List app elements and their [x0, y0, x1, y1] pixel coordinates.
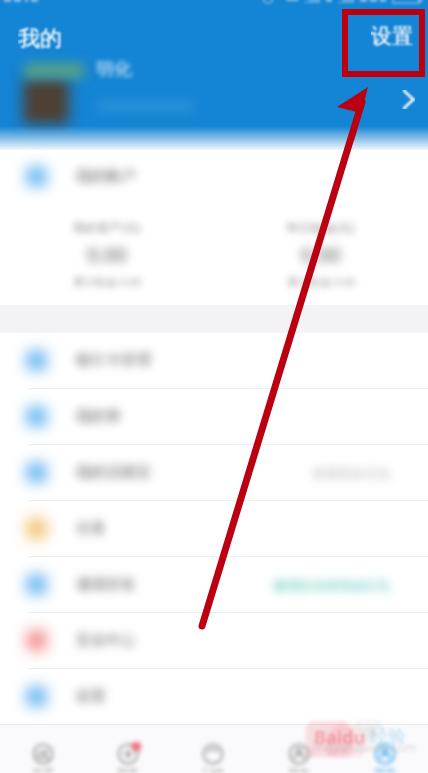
button[interactable]: 财富: [85, 743, 170, 773]
staticText: 0.00: [301, 241, 341, 268]
staticText: 财富: [117, 766, 139, 773]
staticText: 邀请好友得现金红包: [273, 577, 390, 593]
staticText: 设置: [371, 23, 413, 49]
button[interactable]: 安全中心: [0, 613, 428, 668]
staticText: jingyan.baidu.com: [312, 739, 416, 755]
button[interactable]: 我的券: [0, 389, 428, 444]
staticText: 邀请好友: [76, 575, 136, 594]
staticText: 明化: [96, 58, 132, 81]
staticText: 0.00: [87, 241, 127, 268]
staticText: 首页: [32, 766, 54, 773]
staticText: 安全中心: [76, 631, 136, 650]
button[interactable]: 设置: [0, 669, 428, 724]
button[interactable]: 银行卡管理: [0, 333, 428, 388]
staticText: 我的账户: [76, 167, 136, 186]
staticText: Baidu: [314, 725, 366, 750]
button[interactable]: 明化: [0, 55, 428, 140]
button[interactable]: 昨日收益(元): [214, 202, 428, 305]
staticText: 我的资产(元): [73, 219, 141, 235]
staticText: 我的活期宝: [76, 463, 151, 482]
staticText: 门铃: [202, 766, 224, 773]
staticText: 我的: [18, 25, 62, 53]
staticText: 设置: [76, 687, 106, 706]
staticText: 昨日收益(元): [287, 219, 355, 235]
button[interactable]: 我的账户: [0, 150, 428, 202]
button[interactable]: 任务: [0, 501, 428, 556]
button[interactable]: 门铃: [170, 743, 256, 773]
staticText: 累计收益 0.00: [73, 274, 142, 289]
button[interactable]: 邀请好友: [0, 557, 428, 612]
other: Profile details: [402, 90, 415, 109]
staticText: 朋友: [288, 766, 310, 773]
button[interactable]: 我的: [342, 743, 428, 773]
button[interactable]: 我的活期宝: [0, 445, 428, 500]
button[interactable]: 设置: [365, 18, 419, 54]
staticText: 我的券: [76, 407, 121, 426]
staticText: 累计收益 0.00: [287, 274, 356, 289]
staticText: 银行卡管理: [76, 351, 151, 370]
staticText: 我的: [374, 766, 396, 773]
button[interactable]: 朋友: [256, 743, 342, 773]
staticText: 任务: [76, 519, 106, 538]
button[interactable]: 我的资产(元): [0, 202, 214, 305]
button[interactable]: 首页: [0, 743, 85, 773]
staticText: 查看更多活动: [312, 465, 390, 481]
staticText: 经验: [370, 725, 406, 748]
